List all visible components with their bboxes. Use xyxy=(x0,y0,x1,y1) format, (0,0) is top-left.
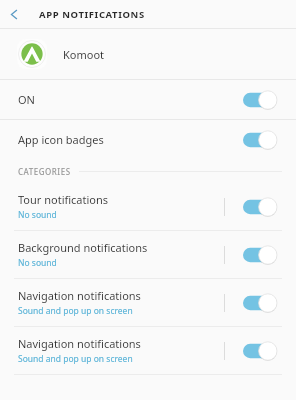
staticText: Background notifications xyxy=(18,240,148,255)
staticText: App icon badges xyxy=(18,132,104,147)
button[interactable]: Toggle xyxy=(243,341,277,361)
staticText: ON xyxy=(18,92,35,107)
button[interactable]: App icon badges xyxy=(0,120,296,159)
button[interactable]: Navigation notifications xyxy=(0,327,296,374)
button[interactable]: ON xyxy=(0,80,296,119)
button[interactable]: Toggle xyxy=(243,293,277,313)
staticText: Sound and pop up on screen xyxy=(18,305,133,317)
button[interactable]: Komoot xyxy=(0,29,296,79)
staticText: Navigation notifications xyxy=(18,336,141,351)
staticText: Komoot xyxy=(63,47,105,62)
staticText: Tour notifications xyxy=(18,192,109,207)
staticText: CATEGORIES xyxy=(18,166,71,177)
button[interactable]: Back xyxy=(0,0,28,28)
staticText: No sound xyxy=(18,257,57,269)
button[interactable]: Tour notifications xyxy=(0,183,296,230)
staticText: Navigation notifications xyxy=(18,288,141,303)
button[interactable]: Toggle xyxy=(243,130,277,150)
staticText: No sound xyxy=(18,209,57,221)
button[interactable]: Toggle xyxy=(243,245,277,265)
staticText: APP NOTIFICATIONS xyxy=(39,8,145,21)
button[interactable]: Background notifications xyxy=(0,231,296,278)
staticText: Sound and pop up on screen xyxy=(18,353,133,365)
button[interactable]: Navigation notifications xyxy=(0,279,296,326)
button[interactable]: Toggle xyxy=(243,197,277,217)
button[interactable]: Toggle xyxy=(243,90,277,110)
